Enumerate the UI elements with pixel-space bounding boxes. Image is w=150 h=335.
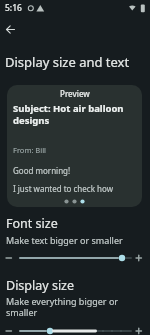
staticText: Display size [6, 277, 75, 294]
staticText: Display size and text [5, 53, 130, 71]
button[interactable] [0, 325, 150, 335]
staticText: Font size [6, 215, 58, 232]
button[interactable] [0, 252, 150, 264]
button[interactable]: Font size [0, 212, 150, 248]
button[interactable]: Preview [7, 85, 142, 207]
staticText: 5:16 [5, 2, 22, 14]
staticText: Subject: Hot air balloon designs [13, 102, 124, 127]
staticText: Make everything bigger or smaller [6, 295, 119, 318]
staticText: Preview [60, 88, 90, 99]
staticText: I just wanted to check how [13, 183, 113, 194]
button[interactable]: Display size [0, 274, 150, 320]
button[interactable] [3, 22, 18, 37]
staticText: Make text bigger or smaller [6, 234, 123, 246]
staticText: Good morning! [13, 165, 71, 176]
staticText: From: Bill [13, 145, 47, 155]
